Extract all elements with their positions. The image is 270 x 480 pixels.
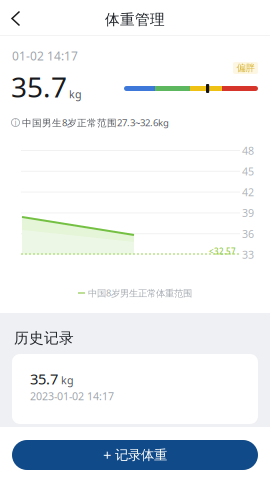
staticText: 偏胖 (236, 62, 254, 74)
button[interactable]: + (12, 440, 258, 470)
staticText: 中国男生8岁正常范围27.3~32.6kg (22, 116, 169, 129)
staticText: 45 (242, 164, 254, 178)
staticText: 记录体重 (115, 447, 167, 463)
staticText: 48 (242, 143, 254, 158)
staticText: 中国8岁男生正常体重范围 (88, 287, 192, 299)
staticText: kg (69, 87, 82, 101)
staticText: kg (61, 373, 74, 387)
staticText: 35.7 (11, 68, 67, 105)
button[interactable]: 返回 (2, 8, 26, 28)
staticText: 35.7 (30, 369, 58, 388)
staticText: i (14, 117, 16, 128)
staticText: <32.57 (209, 246, 236, 257)
staticText: 历史记录 (14, 329, 74, 347)
staticText: + (103, 445, 111, 465)
button[interactable]: 35.7 (12, 354, 258, 424)
staticText: 42 (242, 185, 254, 199)
staticText: 2023-01-02 14:17 (30, 389, 114, 403)
staticText: 39 (242, 206, 254, 220)
staticText: 36 (242, 227, 254, 241)
staticText: 33 (242, 247, 254, 262)
staticText: 体重管理 (105, 10, 165, 28)
staticText: 01-02 14:17 (12, 48, 78, 64)
